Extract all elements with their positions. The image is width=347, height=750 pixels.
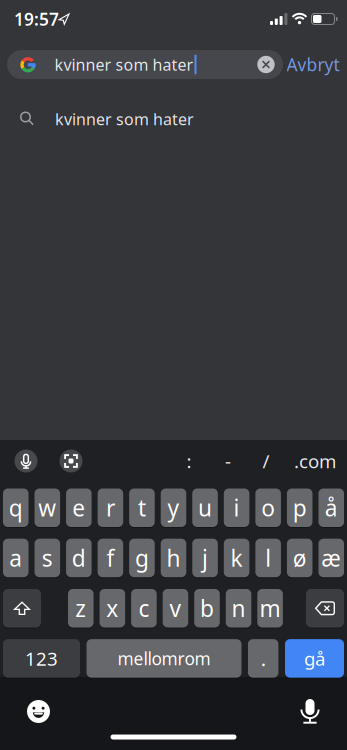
- button[interactable]: o: [255, 487, 281, 528]
- button[interactable]: mellomrom: [86, 638, 241, 679]
- staticText: f: [106, 543, 114, 573]
- staticText: /: [262, 449, 269, 473]
- button[interactable]: [257, 55, 275, 73]
- button[interactable]: p: [287, 487, 312, 528]
- button[interactable]: k: [224, 538, 249, 578]
- staticText: 19:57: [14, 7, 59, 30]
- staticText: kvinner som hater: [54, 54, 193, 75]
- staticText: u: [198, 493, 212, 523]
- staticText: q: [9, 493, 23, 523]
- button[interactable]: v: [163, 588, 188, 628]
- button[interactable]: ø: [287, 538, 312, 578]
- button[interactable]: æ: [318, 538, 344, 578]
- staticText: i: [234, 493, 240, 523]
- staticText: o: [261, 493, 275, 523]
- button[interactable]: m: [257, 588, 283, 628]
- staticText: n: [232, 593, 246, 623]
- staticText: å: [325, 493, 338, 523]
- staticText: a: [9, 543, 22, 573]
- button[interactable]: å: [318, 487, 344, 528]
- button[interactable]: f: [98, 538, 123, 578]
- button[interactable]: .com: [287, 448, 343, 474]
- button[interactable]: b: [194, 588, 220, 628]
- staticText: 123: [25, 646, 58, 671]
- staticText: j: [202, 543, 208, 573]
- staticText: :: [186, 449, 191, 473]
- staticText: e: [72, 493, 85, 523]
- button[interactable]: [306, 588, 344, 628]
- button[interactable]: q: [3, 487, 28, 528]
- button[interactable]: j: [192, 538, 218, 578]
- button[interactable]: :: [174, 448, 204, 474]
- button[interactable]: u: [192, 487, 218, 528]
- button[interactable]: s: [34, 538, 60, 578]
- button[interactable]: .: [248, 638, 278, 679]
- button[interactable]: n: [226, 588, 251, 628]
- button[interactable]: Avbryt: [283, 48, 343, 80]
- staticText: s: [42, 543, 53, 573]
- staticText: m: [260, 593, 281, 623]
- staticText: w: [38, 493, 56, 523]
- staticText: p: [293, 493, 307, 523]
- button[interactable]: 123: [3, 638, 80, 679]
- staticText: gå: [304, 646, 325, 671]
- staticText: ø: [293, 543, 307, 573]
- staticText: b: [200, 593, 214, 623]
- button[interactable]: x: [99, 588, 125, 628]
- button[interactable]: l: [255, 538, 281, 578]
- button[interactable]: [3, 588, 41, 628]
- staticText: kvinner som hater: [55, 108, 194, 130]
- staticText: -: [225, 449, 231, 473]
- button[interactable]: kvinner som hater: [0, 97, 347, 141]
- staticText: h: [166, 543, 180, 573]
- button[interactable]: [59, 449, 82, 472]
- button[interactable]: c: [131, 588, 157, 628]
- button[interactable]: g: [129, 538, 155, 578]
- staticText: t: [138, 493, 146, 523]
- button[interactable]: w: [34, 487, 60, 528]
- button[interactable]: h: [161, 538, 186, 578]
- staticText: r: [106, 493, 115, 523]
- staticText: x: [106, 593, 118, 623]
- button[interactable]: e: [66, 487, 92, 528]
- staticText: c: [138, 593, 149, 623]
- button[interactable]: -: [213, 448, 243, 474]
- button[interactable]: gå: [285, 638, 344, 679]
- staticText: z: [75, 593, 86, 623]
- button[interactable]: d: [66, 538, 92, 578]
- button[interactable]: r: [98, 487, 123, 528]
- staticText: g: [135, 543, 149, 573]
- staticText: .com: [294, 449, 336, 473]
- button[interactable]: [300, 697, 320, 723]
- staticText: Avbryt: [286, 53, 339, 76]
- button[interactable]: z: [68, 588, 94, 628]
- button[interactable]: /: [251, 448, 281, 474]
- button[interactable]: [7, 50, 283, 79]
- button[interactable]: [14, 449, 37, 472]
- button[interactable]: [27, 700, 50, 723]
- staticText: .: [261, 645, 266, 672]
- button[interactable]: t: [129, 487, 155, 528]
- staticText: k: [231, 543, 243, 573]
- staticText: mellomrom: [117, 647, 210, 670]
- staticText: l: [265, 543, 271, 573]
- button[interactable]: y: [161, 487, 186, 528]
- staticText: æ: [321, 543, 341, 573]
- staticText: y: [167, 493, 179, 523]
- button[interactable]: i: [224, 487, 249, 528]
- staticText: v: [169, 593, 181, 623]
- button[interactable]: a: [3, 538, 28, 578]
- staticText: d: [72, 543, 86, 573]
